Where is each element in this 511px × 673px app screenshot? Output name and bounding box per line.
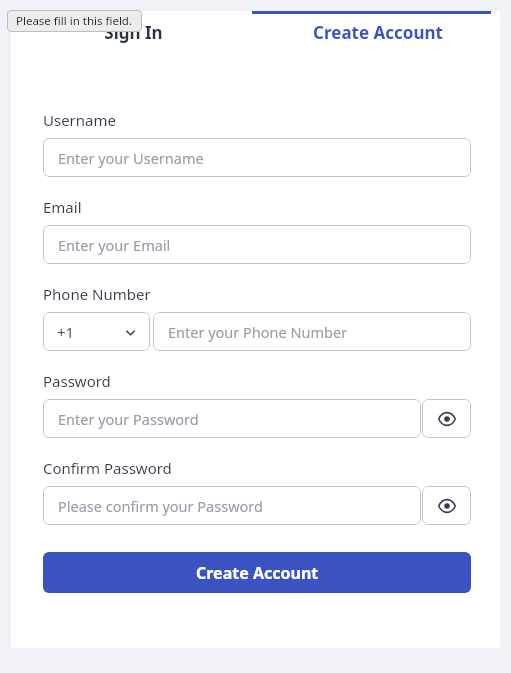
staticText: Create Account	[196, 562, 319, 584]
button[interactable]: Enter your Password	[43, 399, 421, 438]
staticText: Please confirm your Password	[58, 496, 263, 516]
button[interactable]: Create Account	[255, 11, 500, 53]
staticText: Username	[43, 110, 116, 130]
staticText: Enter your Password	[58, 409, 199, 429]
staticText: Enter your Username	[58, 148, 204, 168]
button[interactable]: Show password	[422, 486, 471, 525]
button[interactable]: Sign In	[11, 11, 255, 53]
button[interactable]: Show password	[422, 399, 471, 438]
staticText: Sign In	[104, 21, 163, 44]
staticText: Enter your Email	[58, 235, 171, 255]
staticText: Confirm Password	[43, 458, 172, 478]
button[interactable]: Enter your Email	[43, 225, 471, 264]
staticText: Enter your Phone Number	[168, 322, 348, 342]
button[interactable]: Create Account	[43, 552, 471, 593]
staticText: Create Account	[313, 21, 443, 44]
staticText: Password	[43, 371, 111, 391]
staticText: +1	[57, 322, 75, 342]
button[interactable]: +1	[43, 312, 150, 351]
button[interactable]: Enter your Username	[43, 138, 471, 177]
staticText: Email	[43, 197, 82, 217]
staticText: Phone Number	[43, 284, 151, 304]
staticText: Please fill in this field.	[16, 13, 133, 29]
button[interactable]: Enter your Phone Number	[153, 312, 471, 351]
button[interactable]: Please confirm your Password	[43, 486, 421, 525]
